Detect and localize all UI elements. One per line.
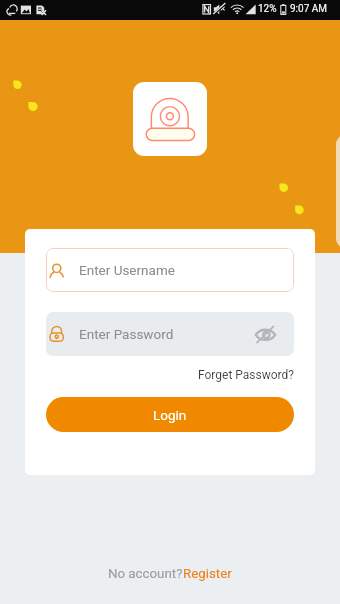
staticText: 12% bbox=[258, 3, 277, 15]
button[interactable]: Show password bbox=[254, 312, 294, 356]
staticText: Enter Password bbox=[79, 326, 174, 342]
staticText: No account? bbox=[108, 566, 183, 582]
button[interactable]: Login bbox=[46, 397, 294, 432]
button[interactable]: Enter Password bbox=[46, 312, 294, 356]
button[interactable]: Enter Username bbox=[46, 248, 294, 292]
button[interactable]: Register bbox=[183, 566, 232, 582]
staticText: Enter Username bbox=[79, 262, 175, 278]
button[interactable]: Forget Password? bbox=[198, 368, 294, 382]
staticText: 9:07 AM bbox=[290, 3, 328, 15]
staticText: Login bbox=[153, 407, 187, 423]
